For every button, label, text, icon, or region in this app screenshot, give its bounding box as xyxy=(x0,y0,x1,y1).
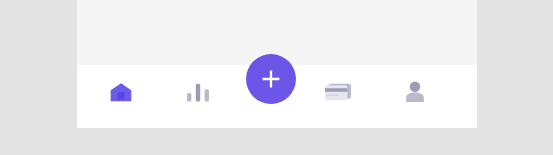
button[interactable]: Profile xyxy=(395,72,435,112)
button[interactable]: Add xyxy=(246,54,296,104)
button[interactable]: Statistics xyxy=(178,72,218,112)
button[interactable]: Home xyxy=(101,72,141,112)
button[interactable]: Cards xyxy=(318,72,358,112)
